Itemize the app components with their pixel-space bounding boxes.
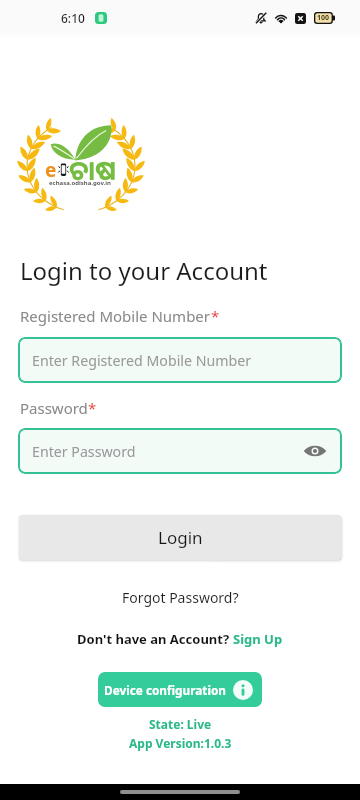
staticText: Sign Up [233, 630, 283, 648]
button[interactable]: Sign Up [233, 630, 283, 648]
staticText: Login to your Account [20, 254, 268, 287]
staticText: 6:10 [61, 10, 85, 26]
staticText: Password [20, 398, 88, 418]
staticText: Enter Password [32, 442, 136, 461]
staticText: Forgot Password? [122, 588, 239, 607]
staticText: 100 [317, 13, 330, 23]
staticText: App Version:1.0.3 [129, 735, 232, 751]
staticText: Enter Registered Mobile Number [32, 351, 252, 370]
staticText: * [211, 306, 220, 326]
staticText: Registered Mobile Number [20, 306, 211, 326]
staticText: State: Live [149, 716, 212, 732]
button[interactable]: Enter Registered Mobile Number [18, 337, 342, 383]
button[interactable]: Device configuration [98, 672, 262, 707]
staticText: Don't have an Account? [77, 630, 233, 648]
staticText: Device configuration [104, 682, 227, 698]
staticText: ଚାଷ [69, 151, 117, 188]
button[interactable]: Enter Password [18, 428, 342, 474]
button[interactable]: Forgot Password? [112, 584, 249, 611]
button[interactable]: Show password [302, 438, 328, 464]
staticText: * [88, 398, 97, 418]
staticText: echasa.odisha.gov.in [49, 179, 111, 187]
staticText: Login [158, 526, 203, 549]
staticText: e [45, 157, 57, 183]
button[interactable]: Login [19, 515, 341, 560]
